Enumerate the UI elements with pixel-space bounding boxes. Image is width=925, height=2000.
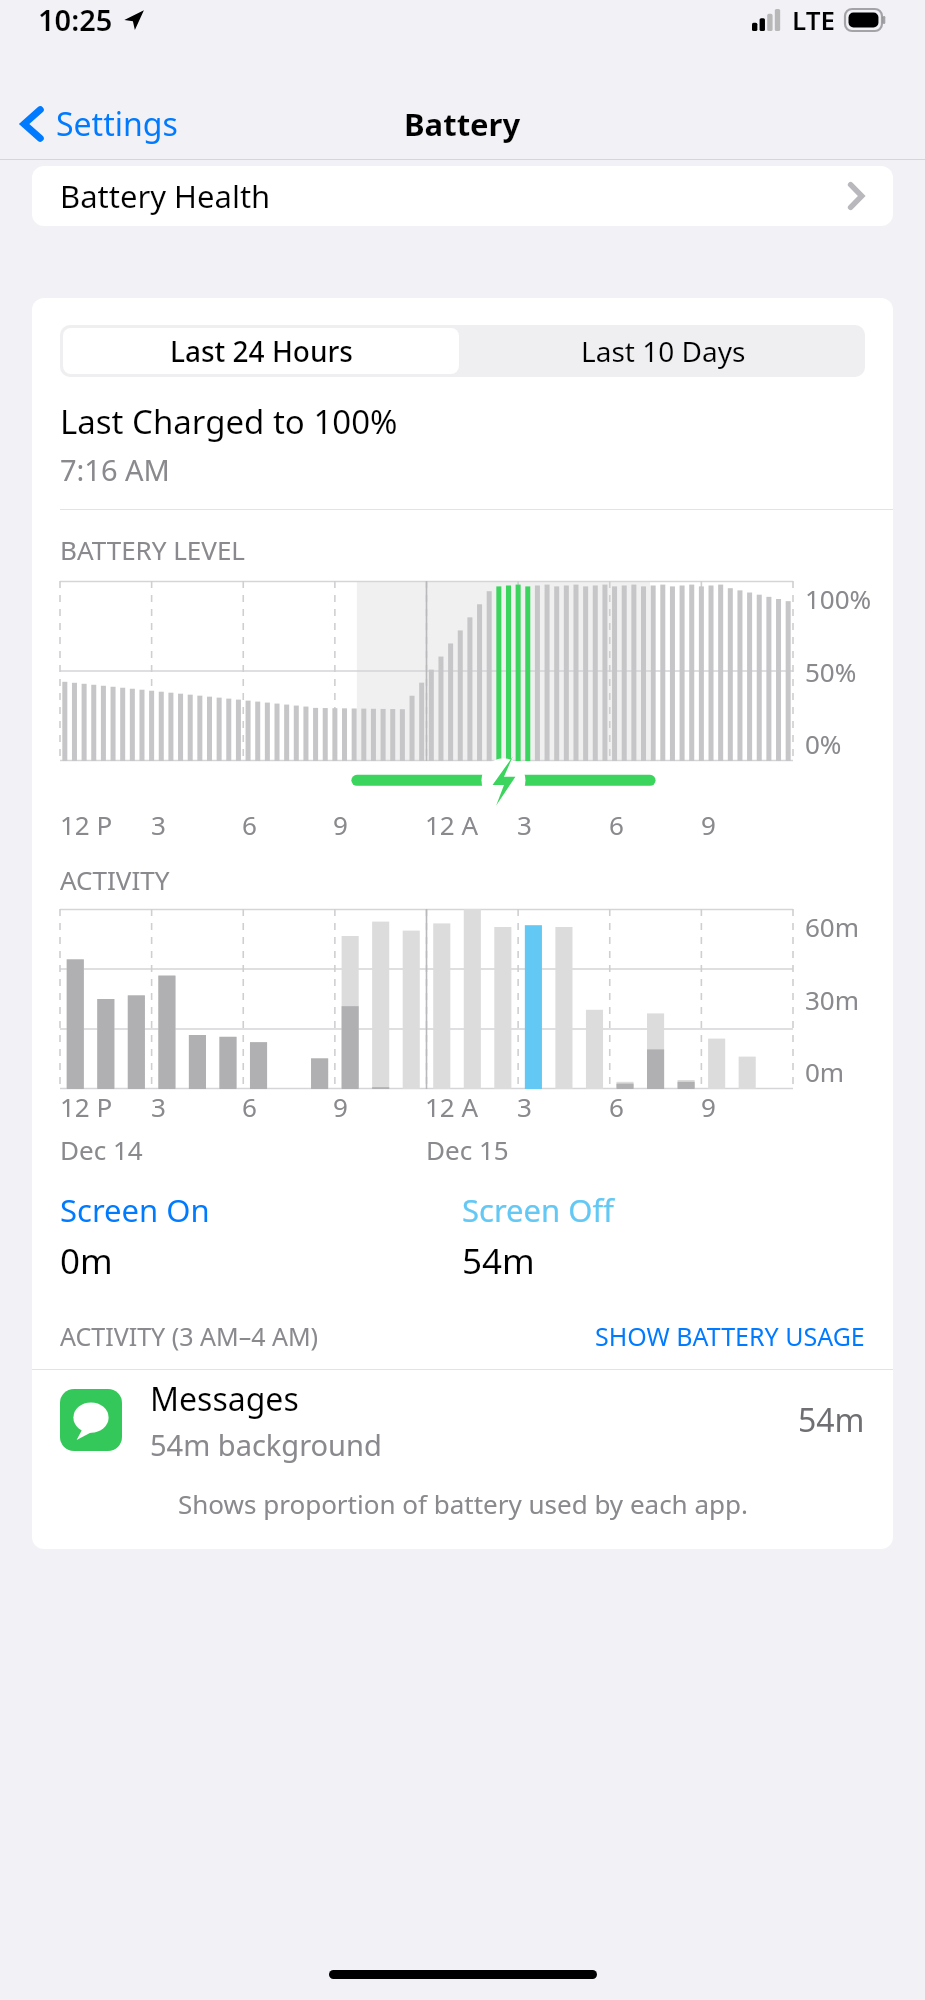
staticText: BATTERY LEVEL (60, 532, 245, 567)
staticText: 3 (517, 1089, 532, 1124)
button[interactable]: Battery Health (32, 166, 893, 226)
staticText: 12 A (425, 1089, 479, 1124)
staticText: 60m (805, 909, 860, 944)
staticText: Last Charged to 100% (60, 399, 398, 444)
staticText: Last 24 Hours (170, 332, 353, 370)
staticText: 12 A (425, 807, 479, 842)
staticText: 12 P (60, 807, 113, 842)
staticText: 0m (60, 1237, 113, 1285)
staticText: 3 (151, 1089, 166, 1124)
staticText: 9 (701, 1089, 716, 1124)
staticText: 3 (517, 807, 532, 842)
staticText: 10:25 (38, 0, 113, 39)
staticText: Settings (56, 102, 178, 146)
staticText: Battery (404, 103, 521, 145)
staticText: 9 (333, 1089, 348, 1124)
staticText: LTE (792, 2, 835, 37)
staticText: 100% (805, 581, 872, 616)
staticText: 9 (333, 807, 348, 842)
staticText: Messages (150, 1377, 299, 1421)
staticText: Screen On (60, 1189, 210, 1231)
staticText: 7:16 AM (60, 450, 170, 489)
staticText: 54m (798, 1398, 865, 1442)
staticText: 50% (805, 654, 857, 689)
staticText: ACTIVITY (60, 862, 170, 897)
button[interactable]: SHOW BATTERY USAGE (595, 1319, 865, 1353)
staticText: 3 (151, 807, 166, 842)
staticText: 6 (609, 807, 624, 842)
staticText: Shows proportion of battery used by each… (178, 1486, 748, 1521)
staticText: 9 (701, 807, 716, 842)
button[interactable]: Settings (20, 88, 925, 160)
staticText: 0m (805, 1054, 845, 1089)
button[interactable]: Last 10 Days (462, 325, 865, 377)
staticText: 30m (805, 982, 860, 1017)
staticText: Dec 15 (426, 1132, 509, 1167)
staticText: Battery Health (60, 175, 271, 217)
staticText: Dec 14 (60, 1132, 143, 1167)
staticText: ACTIVITY (3 AM–4 AM) (60, 1319, 319, 1353)
staticText: 12 P (60, 1089, 113, 1124)
staticText: 6 (609, 1089, 624, 1124)
button[interactable]: Messages (60, 1370, 865, 1470)
staticText: 6 (242, 1089, 257, 1124)
staticText: Last 10 Days (581, 332, 746, 370)
staticText: 6 (242, 807, 257, 842)
staticText: 54m (462, 1237, 535, 1285)
staticText: SHOW BATTERY USAGE (595, 1319, 865, 1353)
staticText: 0% (805, 726, 842, 761)
button[interactable]: Last 24 Hours (63, 328, 459, 374)
staticText: Screen Off (462, 1189, 614, 1231)
staticText: 54m background (150, 1425, 382, 1464)
